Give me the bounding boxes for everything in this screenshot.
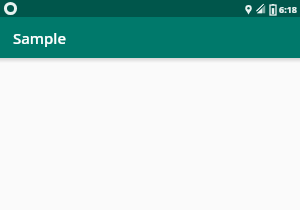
- other: Notification: [5, 3, 16, 14]
- other: Battery: [270, 4, 276, 15]
- staticText: Sample: [13, 28, 66, 48]
- other: No signal: [256, 4, 266, 14]
- other: Location: [245, 4, 252, 15]
- button[interactable]: Sample: [0, 17, 300, 58]
- staticText: 6:18: [279, 3, 297, 15]
